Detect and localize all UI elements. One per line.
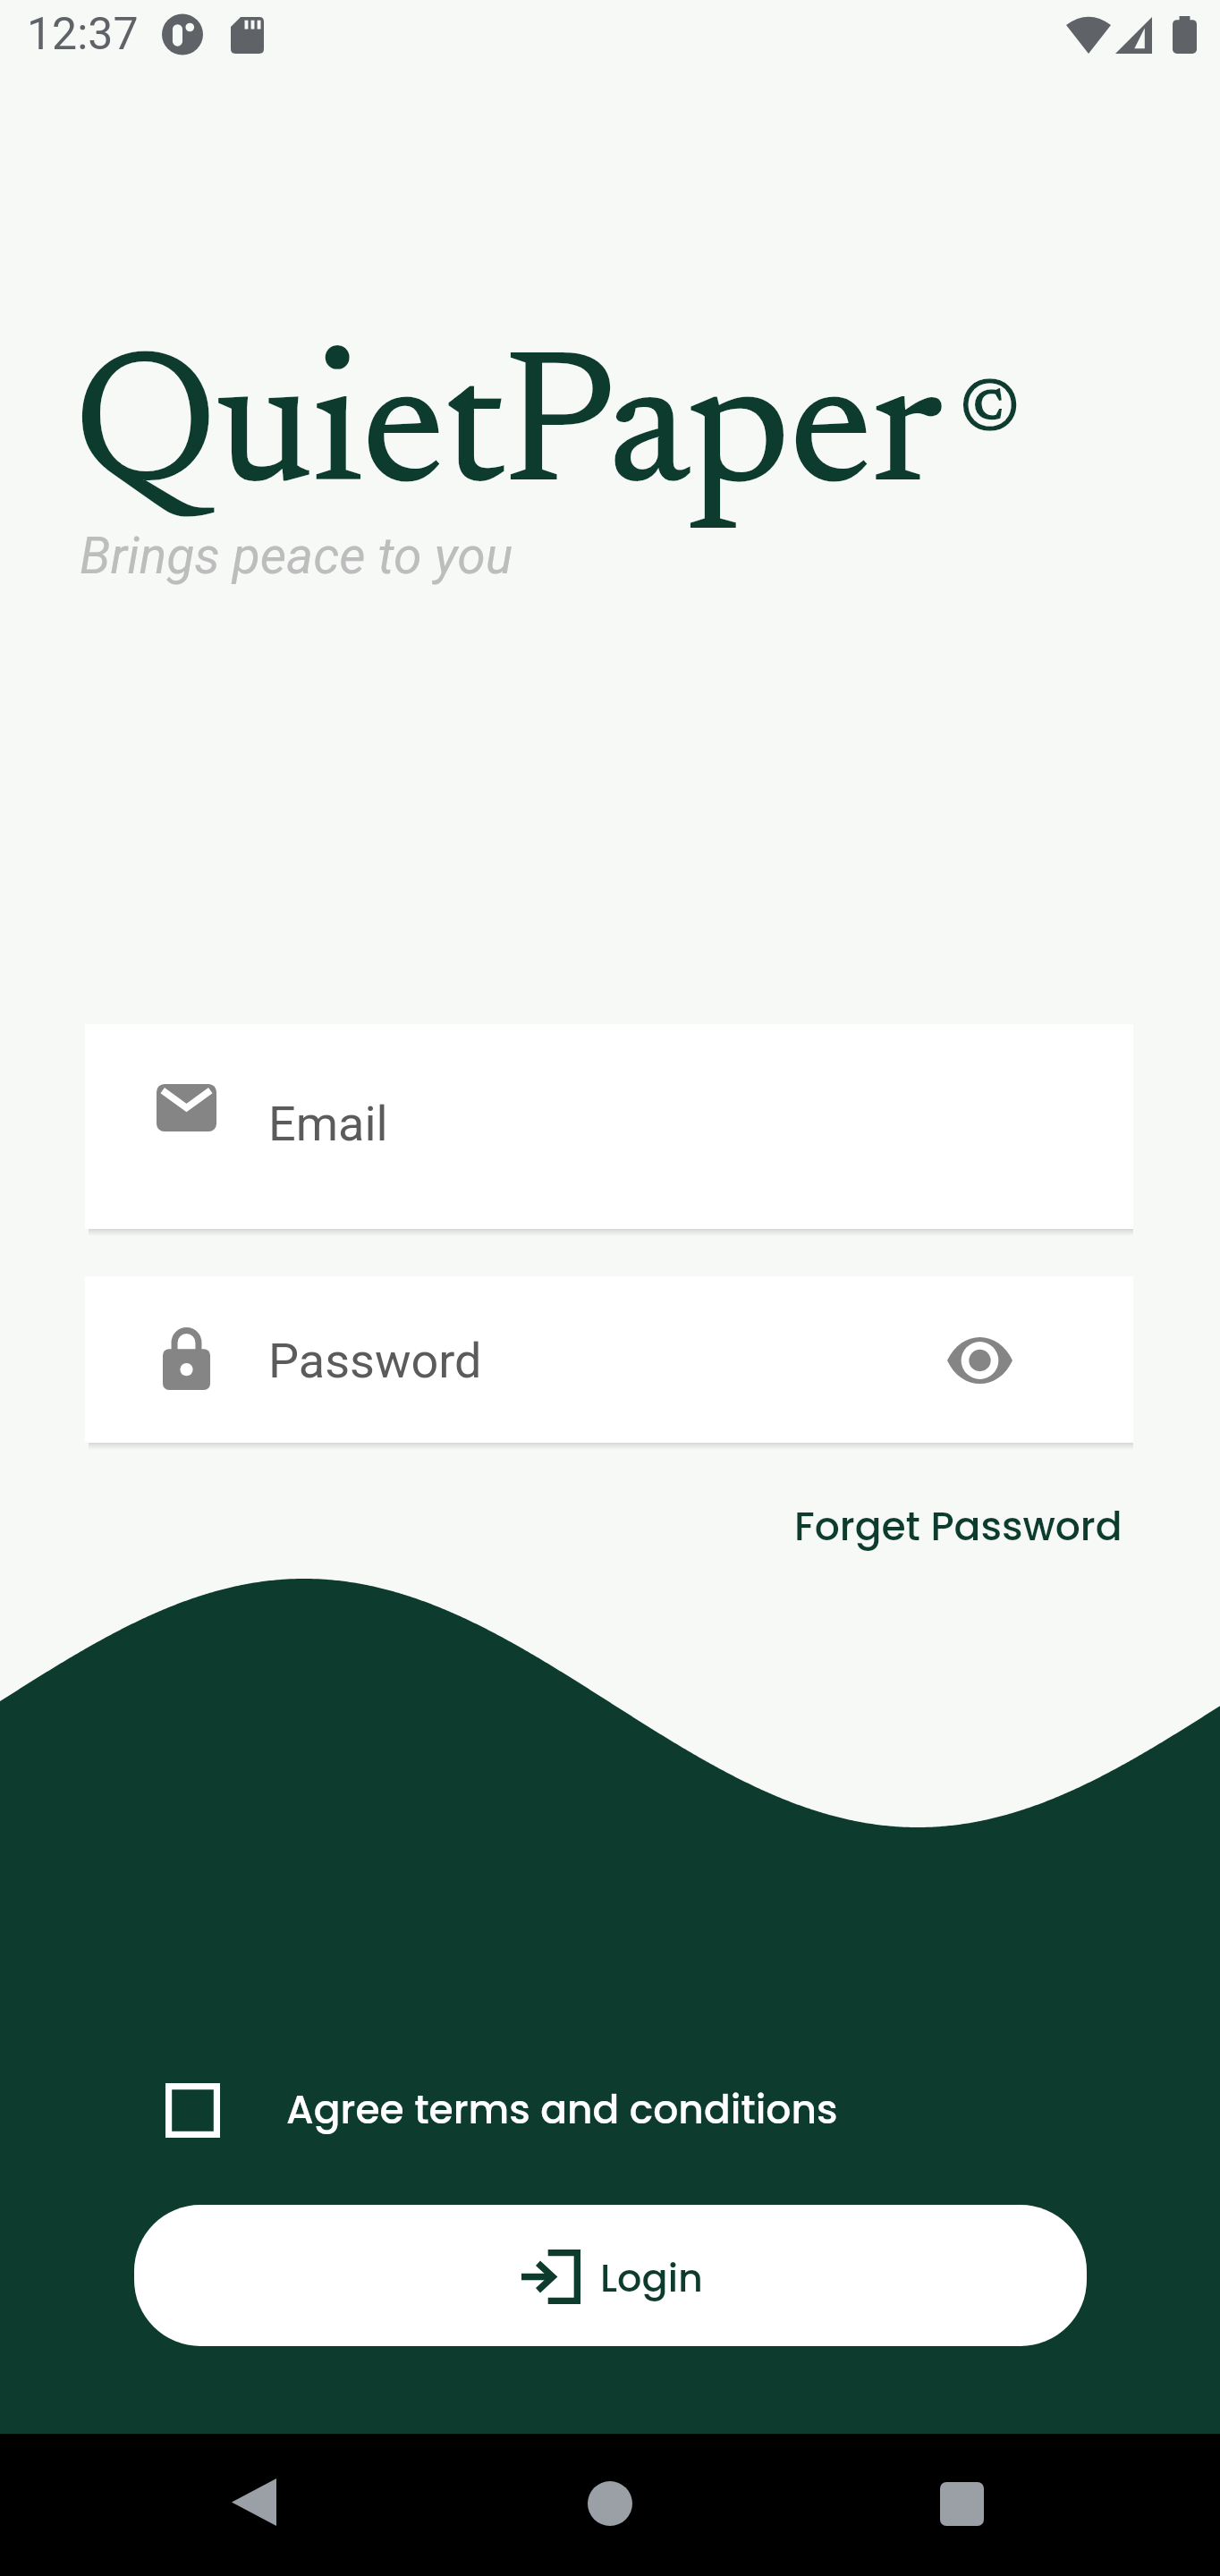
- staticText: QuietPaper: [74, 341, 943, 528]
- button[interactable]: Forget Password: [794, 1499, 1123, 1555]
- staticText: Agree terms and conditions: [286, 2082, 838, 2138]
- button[interactable]: Back: [232, 2479, 276, 2526]
- staticText: Email: [268, 1096, 388, 1152]
- staticText: Brings peace to you: [80, 526, 513, 586]
- staticText: Forget Password: [794, 1499, 1123, 1555]
- button[interactable]: Show password: [913, 1294, 1046, 1427]
- button[interactable]: Email: [85, 1024, 1133, 1229]
- button[interactable]: Home: [588, 2481, 632, 2526]
- staticText: QuietPaper: [74, 341, 943, 528]
- staticText: Login: [600, 2251, 703, 2305]
- button[interactable]: Password: [85, 1276, 1133, 1443]
- staticText: 12:37: [27, 8, 139, 61]
- button[interactable]: Agree terms and conditions: [165, 2082, 838, 2138]
- staticText: ©: [960, 375, 1021, 449]
- staticText: Password: [268, 1333, 482, 1389]
- button[interactable]: Login: [134, 2205, 1087, 2346]
- button[interactable]: Recent apps: [940, 2482, 984, 2526]
- staticText: ©: [960, 375, 1021, 449]
